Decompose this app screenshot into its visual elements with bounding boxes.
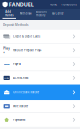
staticText: PayPal xyxy=(13,62,21,66)
staticText: PayNearMe xyxy=(13,118,25,121)
staticText: Withdraw xyxy=(20,12,32,15)
button[interactable]: Promotions xyxy=(59,1,78,8)
staticText: ACH xyxy=(4,76,9,79)
staticText: Promotions xyxy=(60,3,76,6)
button[interactable]: Credit & Debit Cards xyxy=(0,30,80,43)
staticText: ACH/eCheck xyxy=(13,76,28,80)
button[interactable]: Home xyxy=(48,1,59,8)
staticText: Play+ xyxy=(3,47,10,54)
button[interactable]: Withdraw xyxy=(19,9,32,20)
button[interactable]: Tax Center xyxy=(51,9,64,20)
staticText: FanDuel Prepaid Play+ xyxy=(13,48,41,52)
staticText: Tax Center xyxy=(52,12,64,15)
staticText: Home xyxy=(49,3,57,6)
staticText: PayPal xyxy=(4,62,10,66)
staticText: Deposit Methods xyxy=(3,23,28,27)
button[interactable]: ACH xyxy=(0,71,80,84)
button[interactable]: Account History xyxy=(35,9,48,20)
staticText: Wire Transfer xyxy=(13,104,28,108)
button[interactable]: FanDuel home xyxy=(0,1,34,8)
button[interactable]: Play+ xyxy=(0,44,80,57)
staticText: Account History xyxy=(36,10,47,17)
button[interactable]: PayNearMe xyxy=(0,113,80,127)
staticText: FANDUEL xyxy=(9,1,34,8)
button[interactable]: Online Bank Transfer xyxy=(0,84,80,100)
button[interactable]: PayPal xyxy=(0,57,80,71)
button[interactable]: Add Funds xyxy=(2,9,16,20)
staticText: Add Funds xyxy=(5,10,13,17)
staticText: Credit & Debit Cards xyxy=(13,35,40,38)
button[interactable]: Wire Transfer xyxy=(0,100,80,112)
staticText: Online Bank Transfer xyxy=(13,91,39,94)
